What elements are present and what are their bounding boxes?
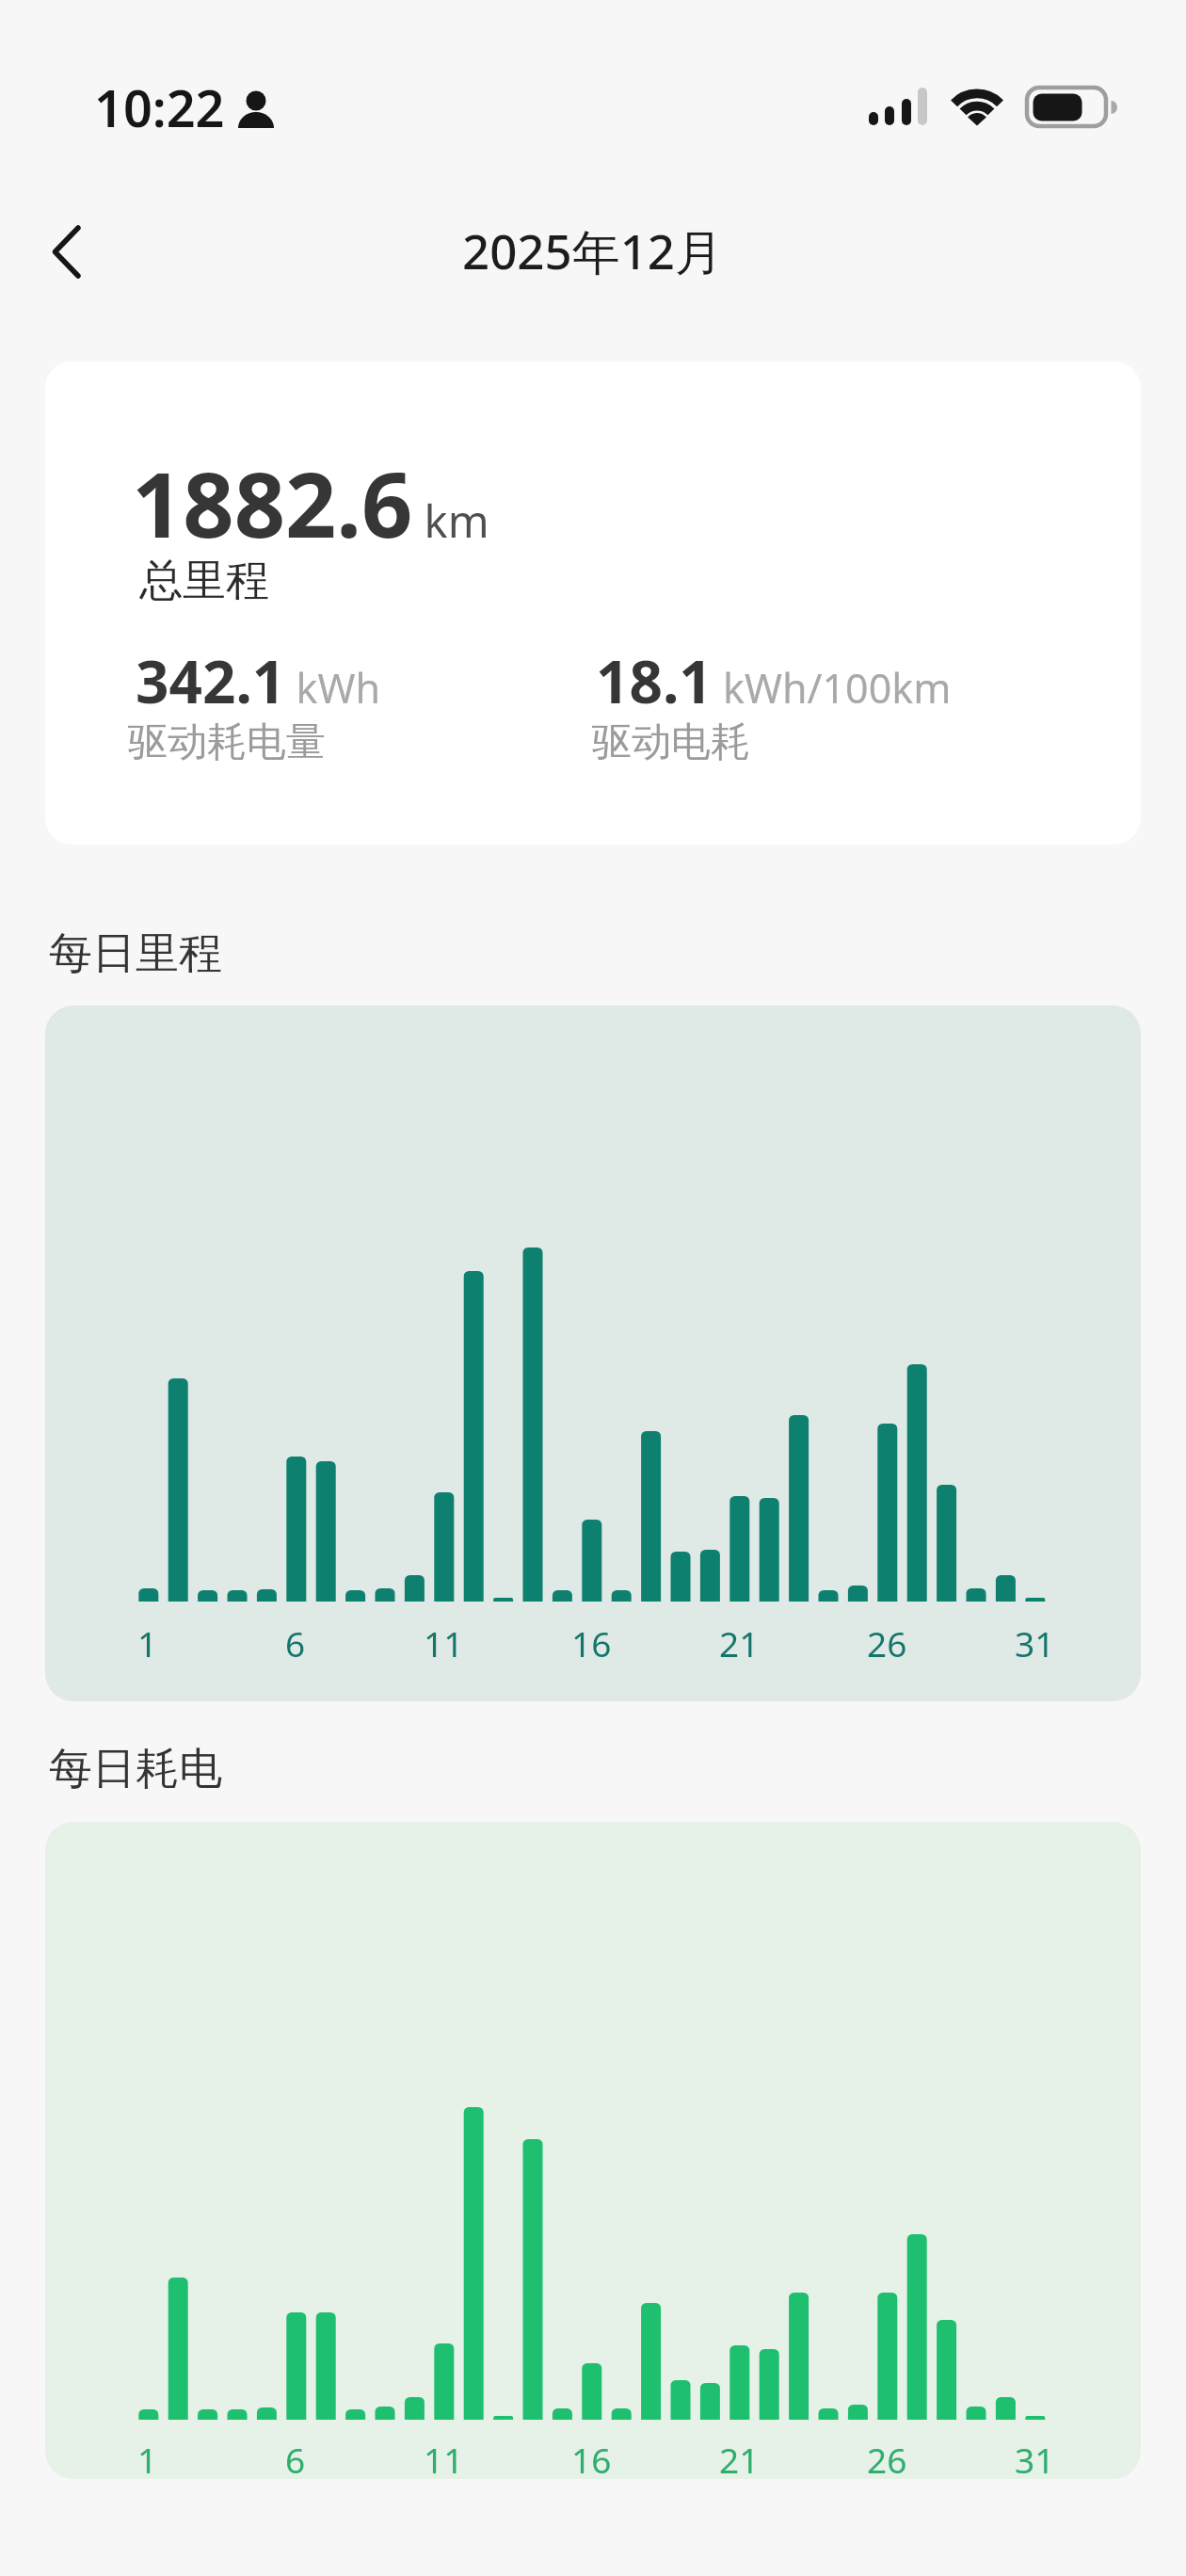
staticText: 31: [1015, 2436, 1055, 2479]
staticText: 21: [719, 1619, 760, 1666]
staticText: 驱动耗电量: [128, 717, 326, 767]
staticText: 1: [137, 2436, 158, 2479]
staticText: 11: [424, 2436, 464, 2479]
staticText: 11: [424, 1619, 464, 1666]
staticText: 18.1 kWh/100km: [596, 641, 952, 720]
staticText: 342.1 kWh: [136, 641, 380, 720]
staticText: 2025年12月: [462, 217, 724, 283]
staticText: 31: [1015, 1619, 1055, 1666]
staticText: 16: [571, 2436, 612, 2479]
button[interactable]: [28, 214, 104, 291]
staticText: 每日里程: [49, 926, 222, 981]
staticText: 1: [137, 1619, 158, 1666]
staticText: 总里程: [139, 554, 269, 608]
staticText: 16: [571, 1619, 612, 1666]
staticText: 21: [719, 2436, 760, 2479]
staticText: 6: [285, 2436, 306, 2479]
staticText: 10:22: [94, 72, 225, 142]
staticText: 每日耗电: [49, 1742, 222, 1796]
staticText: 26: [867, 2436, 907, 2479]
staticText: 26: [867, 1619, 907, 1666]
staticText: 6: [285, 1619, 306, 1666]
staticText: 驱动电耗: [592, 717, 750, 767]
staticText: 1882.6 km: [132, 442, 489, 563]
